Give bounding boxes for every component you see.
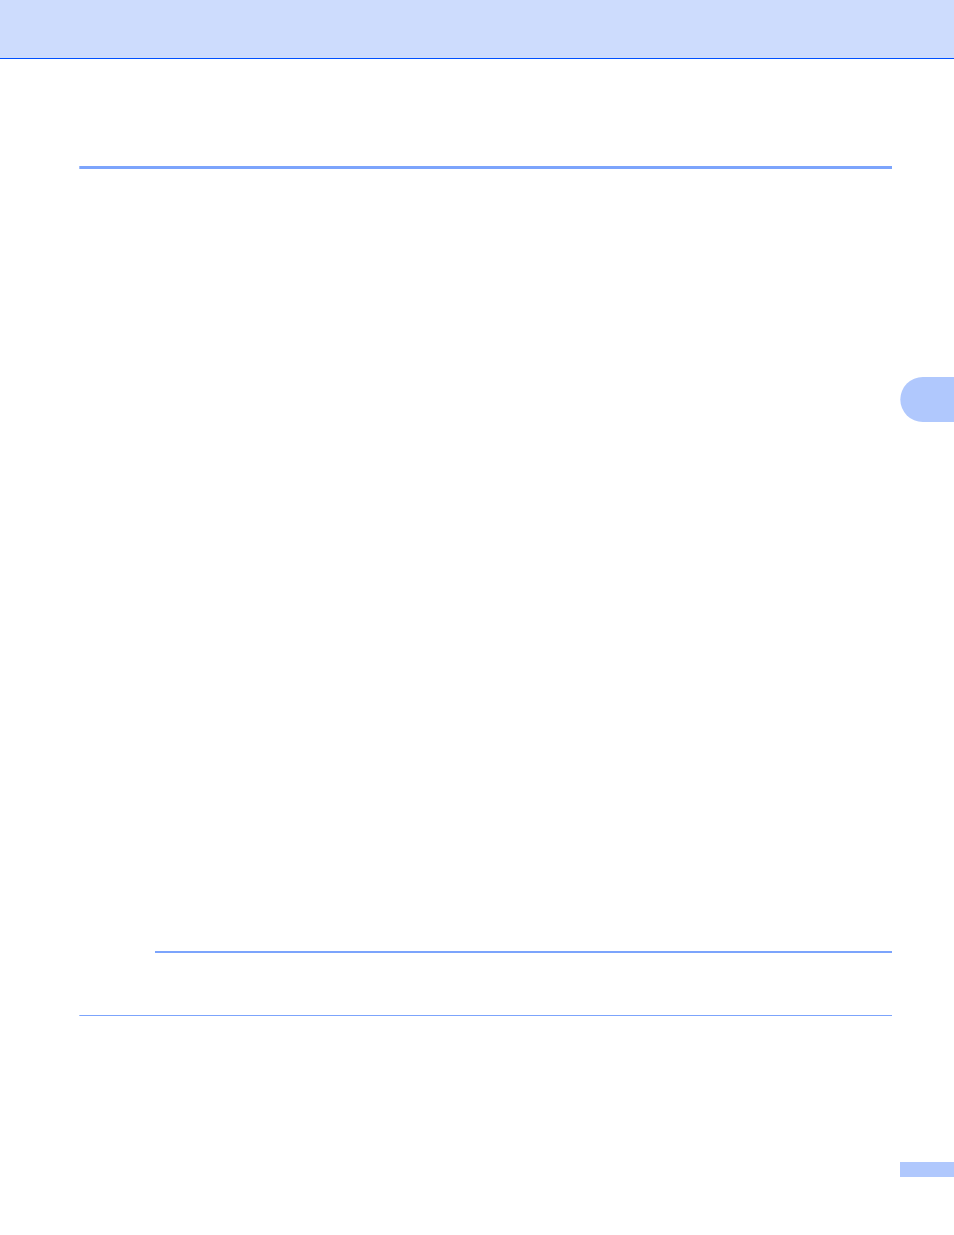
button[interactable]: Scroll position bbox=[900, 377, 954, 422]
button[interactable]: Top app bar bbox=[0, 0, 954, 59]
